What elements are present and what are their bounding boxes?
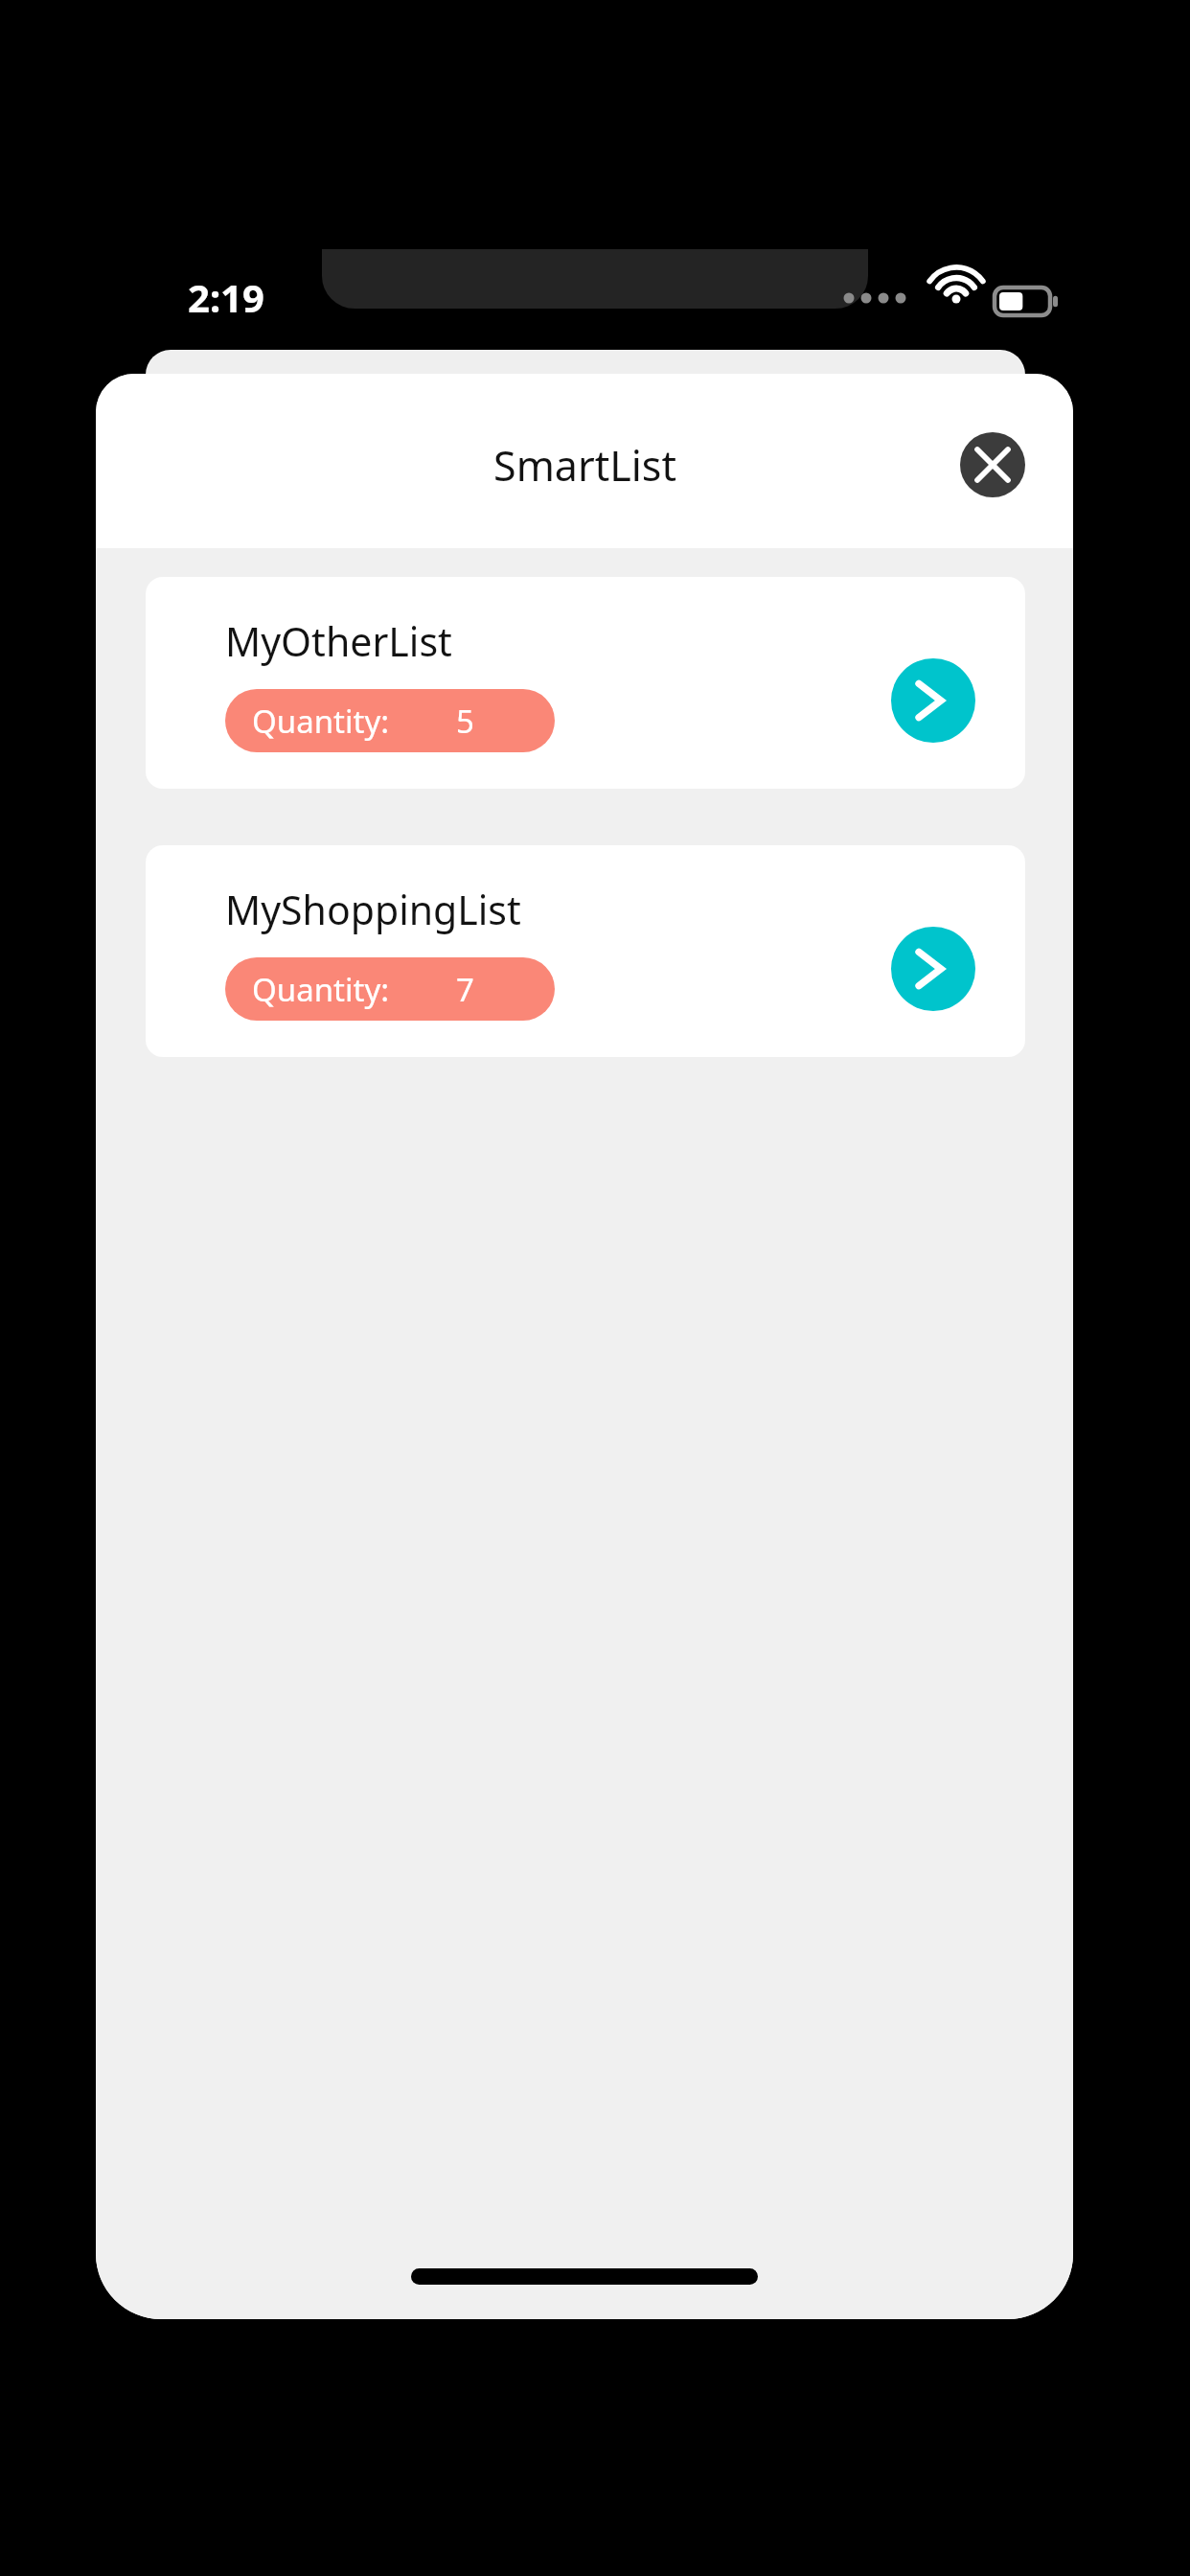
staticText: MyOtherList [225,614,452,668]
staticText: MyShoppingList [225,883,521,936]
button[interactable]: Open MyShoppingList [891,927,975,1011]
staticText: Quantity: [252,700,390,743]
staticText: 5 [456,700,474,743]
staticText: SmartList [493,437,676,494]
button[interactable]: Close [960,432,1025,497]
button[interactable]: MyShoppingList [146,845,1025,1057]
button[interactable]: MyOtherList [146,577,1025,789]
staticText: Quantity: [252,968,390,1011]
staticText: 7 [456,968,474,1011]
staticText: 2:19 [188,271,264,323]
button[interactable]: Open MyOtherList [891,658,975,743]
